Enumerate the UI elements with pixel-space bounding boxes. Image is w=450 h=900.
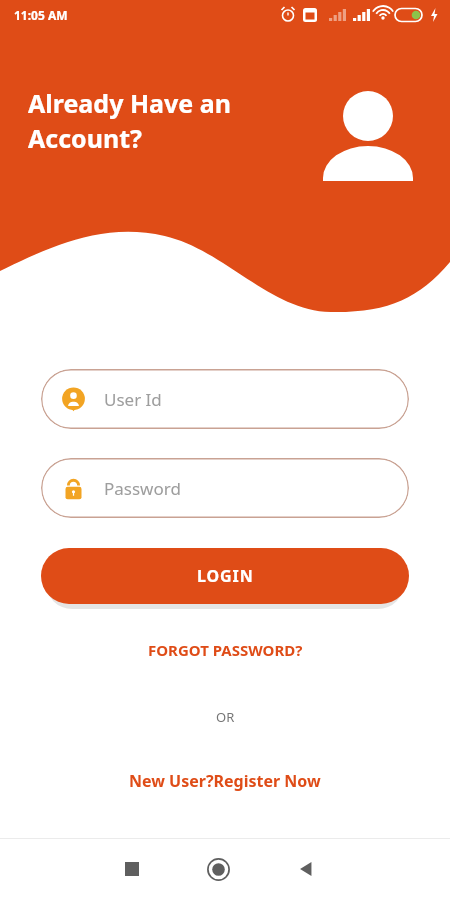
button[interactable]: LOGIN (41, 548, 409, 604)
staticText: User Id (104, 388, 162, 411)
button[interactable]: New User?Register Now (41, 766, 409, 796)
button[interactable]: Recents (110, 847, 154, 891)
button[interactable]: User Id (41, 369, 409, 429)
staticText: FORGOT PASSWORD? (148, 640, 303, 660)
button[interactable]: Password (41, 458, 409, 518)
button[interactable]: FORGOT PASSWORD? (41, 636, 409, 664)
staticText: 11:05 AM (14, 7, 68, 23)
staticText: New User?Register Now (129, 770, 321, 792)
staticText: Already Have an Account? (28, 86, 231, 156)
button[interactable]: Home (196, 847, 240, 891)
staticText: Password (104, 477, 181, 500)
other: Account (318, 84, 418, 188)
staticText: OR (216, 708, 235, 726)
button[interactable]: Back (284, 847, 328, 891)
staticText: LOGIN (197, 565, 254, 587)
